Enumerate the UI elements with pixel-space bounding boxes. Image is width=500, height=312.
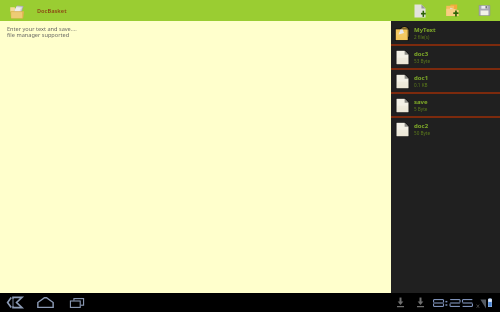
staticText: doc3 <box>414 50 429 58</box>
button[interactable]: Save <box>474 0 494 21</box>
staticText: 0.1 KB <box>414 82 428 88</box>
button[interactable]: doc3 <box>391 46 500 68</box>
staticText: doc2 <box>414 122 429 130</box>
staticText: doc1 <box>414 74 429 82</box>
button[interactable]: Home <box>35 293 56 312</box>
button[interactable]: Open folder <box>442 0 462 21</box>
staticText: 50 Byte <box>414 130 431 136</box>
button[interactable]: Recents <box>66 293 87 312</box>
button[interactable]: doc2 <box>391 118 500 140</box>
staticText: Enter your text and save.... file manage… <box>7 25 77 39</box>
staticText: MyText <box>414 26 436 34</box>
button[interactable]: Back <box>4 293 25 312</box>
button[interactable]: MyText <box>391 22 500 44</box>
staticText: 5 Byte <box>414 106 428 112</box>
button[interactable]: save <box>391 94 500 116</box>
button[interactable]: New file <box>410 0 430 21</box>
button[interactable]: doc1 <box>391 70 500 92</box>
staticText: 2 file(s) <box>414 34 430 40</box>
staticText: 53 Byte <box>414 58 431 64</box>
staticText: save <box>414 98 428 106</box>
staticText: DocBasket <box>37 7 67 15</box>
